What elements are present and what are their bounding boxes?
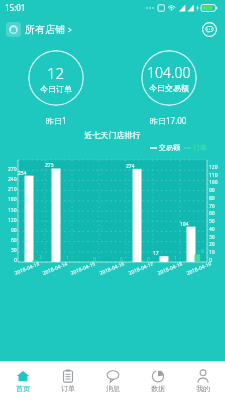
staticText: 数据 <box>151 384 165 393</box>
staticText: 40 <box>209 226 215 233</box>
staticText: 2018-04-14 <box>42 260 69 277</box>
staticText: 180 <box>8 196 17 203</box>
staticText: 210 <box>8 186 17 193</box>
staticText: 0 <box>209 257 212 264</box>
staticText: 60 <box>11 237 17 244</box>
staticText: 我的 <box>196 384 210 393</box>
staticText: 30 <box>11 247 17 254</box>
staticText: 150 <box>8 207 17 214</box>
staticText: 9 <box>201 248 204 255</box>
staticText: 70 <box>209 203 215 210</box>
staticText: 订单 <box>193 143 207 152</box>
staticText: 昨日1 <box>46 115 67 126</box>
staticText: 2 <box>39 254 42 261</box>
staticText: 110 <box>209 172 218 179</box>
staticText: 80 <box>209 195 215 202</box>
staticText: 50 <box>209 218 215 225</box>
staticText: 2018-04-17 <box>128 260 155 277</box>
staticText: 昨日17.00 <box>150 115 187 126</box>
button[interactable]: 104.00 <box>141 50 197 106</box>
staticText: 2018-04-16 <box>99 260 126 277</box>
staticText: 近七天门店排行 <box>0 130 225 140</box>
staticText: 270 <box>8 166 17 173</box>
staticText: 0 <box>120 256 123 263</box>
staticText: 1 <box>66 255 69 262</box>
staticText: 274 <box>126 163 135 170</box>
staticText: 今日交易额 <box>149 83 189 93</box>
staticText: 100 <box>209 179 218 186</box>
staticText: 240 <box>8 176 17 183</box>
staticText: 90 <box>209 187 215 194</box>
staticText: 17 <box>153 250 159 257</box>
staticText: 2018-04-19 <box>186 260 213 277</box>
staticText: 消息 <box>106 384 120 393</box>
staticText: 120 <box>8 217 17 224</box>
button[interactable]: 所有店铺 <box>5 20 74 39</box>
staticText: 0 <box>93 256 96 263</box>
staticText: 15:01 <box>5 2 26 13</box>
staticText: 20 <box>209 241 215 248</box>
button[interactable]: 数据 <box>135 362 180 400</box>
staticText: 所有店铺 <box>25 23 65 36</box>
button[interactable]: 12 <box>28 50 84 106</box>
staticText: 12 <box>47 63 65 83</box>
staticText: 交易额 <box>159 143 180 152</box>
staticText: 2018-04-13 <box>14 260 41 277</box>
staticText: 2018-04-18 <box>157 260 184 277</box>
staticText: 0 <box>147 256 150 263</box>
staticText: 0 <box>14 257 17 264</box>
staticText: 104.00 <box>147 63 191 82</box>
staticText: 275 <box>45 162 54 169</box>
staticText: 今日订单 <box>40 84 72 94</box>
staticText: 30 <box>209 234 215 241</box>
staticText: 2018-04-15 <box>70 260 97 277</box>
button[interactable]: 我的 <box>180 362 225 400</box>
button[interactable]: Messages <box>200 20 218 38</box>
staticText: 首页 <box>16 384 30 393</box>
button[interactable]: 订单 <box>45 362 90 400</box>
staticText: 90 <box>11 227 17 234</box>
staticText: 104 <box>180 221 189 228</box>
staticText: 订单 <box>61 384 75 393</box>
staticText: 120 <box>209 164 218 171</box>
staticText: 1 <box>174 255 177 262</box>
button[interactable]: 首页 <box>0 362 45 400</box>
staticText: 10 <box>209 249 215 256</box>
staticText: 254 <box>18 170 27 177</box>
staticText: 60 <box>209 210 215 217</box>
button[interactable]: 消息 <box>90 362 135 400</box>
